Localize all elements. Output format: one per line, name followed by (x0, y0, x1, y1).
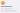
button[interactable]: Profile photo (1, 1, 5, 5)
button[interactable]: Photos, Memories (1, 8, 17, 12)
